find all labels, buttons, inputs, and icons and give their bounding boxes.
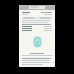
button[interactable]: Official seal bbox=[33, 36, 42, 48]
button[interactable]: Document title bar bbox=[19, 5, 55, 10]
button[interactable]: Document title bar bbox=[19, 5, 55, 67]
